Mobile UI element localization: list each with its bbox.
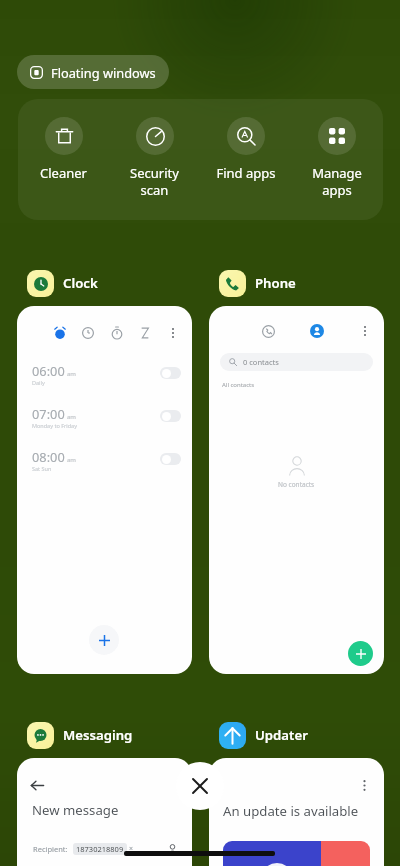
button[interactable]: Clock (27, 267, 98, 299)
staticText: Cleaner (40, 164, 87, 182)
staticText: Security scan (130, 164, 179, 199)
button[interactable]: Cleaner (18, 99, 109, 220)
button[interactable]: Phone (219, 267, 296, 299)
staticText: 18730218809 (76, 844, 124, 854)
button[interactable]: More options (209, 758, 384, 866)
staticText: Monday to Friday (32, 422, 77, 429)
staticText: 06:00 (32, 362, 65, 379)
staticText: Find apps (216, 164, 276, 182)
staticText: Manage apps (312, 164, 362, 199)
staticText: Sat Sun (32, 465, 52, 472)
other: More options (359, 325, 371, 337)
staticText: No contacts (278, 480, 315, 489)
staticText: Clock (63, 274, 98, 292)
staticText: 07:00 (32, 405, 65, 422)
staticText: × (129, 844, 134, 854)
button[interactable]: 08:00 (32, 448, 181, 491)
staticText: All contacts (222, 381, 255, 389)
button[interactable]: More options (17, 306, 192, 674)
staticText: Updater (255, 726, 308, 744)
button[interactable]: Toggle alarm (160, 367, 181, 379)
button[interactable]: Add alarm (89, 625, 119, 655)
button[interactable]: Security scan (109, 99, 200, 220)
staticText: am (67, 370, 76, 378)
button[interactable]: Back (17, 758, 192, 866)
staticText: am (67, 413, 76, 421)
button[interactable]: Add contact (348, 641, 373, 666)
button[interactable]: 0 contacts (220, 353, 373, 371)
button[interactable]: More options (209, 306, 384, 674)
other: Back (31, 779, 44, 792)
staticText: Recipient: (33, 844, 68, 854)
button[interactable]: Manage apps (291, 99, 382, 220)
staticText: 0 contacts (243, 357, 279, 367)
staticText: Floating windows (51, 64, 156, 81)
button[interactable]: Floating windows (17, 55, 169, 89)
button[interactable]: Messaging (27, 719, 133, 751)
other: More options (358, 779, 371, 792)
staticText: am (67, 456, 76, 464)
staticText: An update is available (223, 802, 359, 820)
staticText: Messaging (63, 726, 133, 744)
staticText: Daily (32, 379, 45, 386)
other: More options (167, 327, 179, 339)
button[interactable]: Find apps (200, 99, 291, 220)
button[interactable]: Toggle alarm (160, 410, 181, 422)
button[interactable]: 06:00 (32, 362, 181, 405)
staticText: New message (32, 801, 119, 819)
button[interactable]: Updater (219, 719, 308, 751)
button[interactable]: Close all (176, 762, 224, 810)
staticText: 08:00 (32, 448, 65, 465)
button[interactable]: 07:00 (32, 405, 181, 448)
button[interactable]: Toggle alarm (160, 453, 181, 465)
staticText: Phone (255, 274, 296, 292)
